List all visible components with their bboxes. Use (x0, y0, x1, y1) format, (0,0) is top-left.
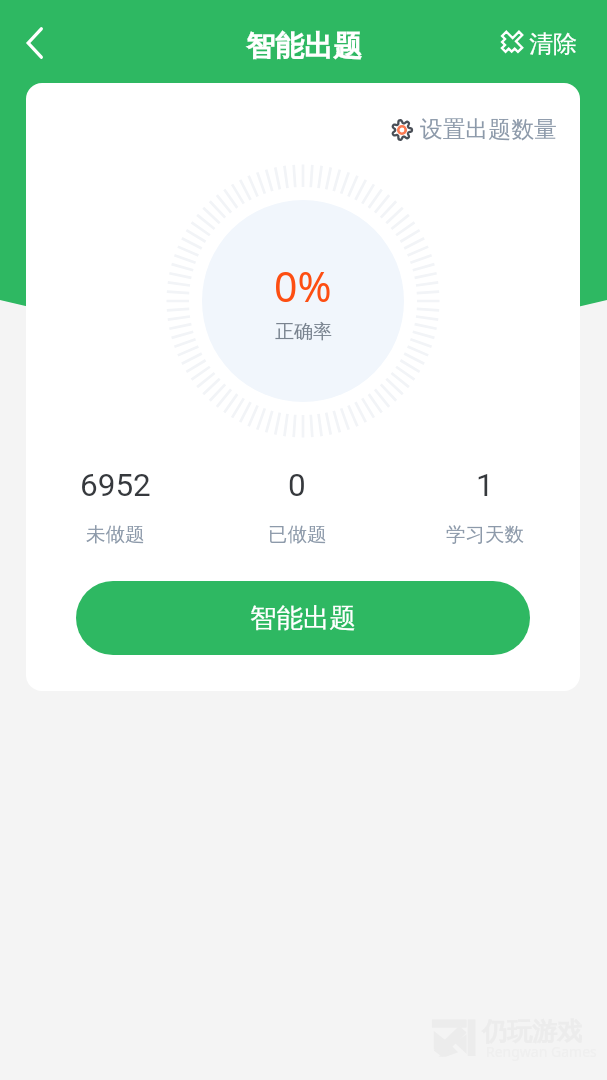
staticText: 0 (288, 467, 306, 504)
button[interactable]: Back (0, 0, 56, 84)
button[interactable]: 0 (247, 467, 347, 547)
staticText: 6952 (80, 467, 151, 504)
button[interactable]: 设置出题数量 (390, 115, 557, 144)
button[interactable]: 清除 (498, 2, 577, 86)
staticText: 清除 (529, 29, 577, 59)
staticText: 已做题 (268, 522, 327, 547)
staticText: 设置出题数量 (420, 115, 557, 144)
staticText: 学习天数 (446, 522, 524, 547)
staticText: 仍玩游戏 (482, 1016, 582, 1047)
staticText: 正确率 (275, 320, 332, 344)
staticText: 1 (476, 467, 494, 504)
staticText: 智能出题 (250, 601, 356, 634)
button[interactable]: 智能出题 (76, 581, 530, 655)
button[interactable]: 1 (435, 467, 535, 547)
staticText: 未做题 (86, 522, 145, 547)
staticText: 0% (274, 258, 332, 314)
button[interactable]: 6952 (65, 467, 165, 547)
staticText: 智能出题 (246, 28, 362, 65)
